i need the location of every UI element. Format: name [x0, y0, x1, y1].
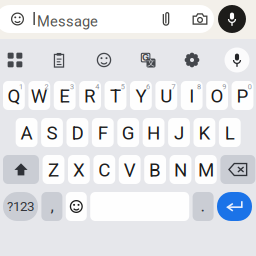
button[interactable]: U — [155, 81, 177, 110]
button[interactable]: D — [66, 118, 88, 147]
button[interactable]: Z — [43, 155, 64, 184]
staticText: T — [110, 85, 121, 107]
button[interactable]: Clipboard — [44, 46, 74, 74]
staticText: D — [71, 122, 83, 144]
staticText: S — [46, 122, 57, 144]
staticText: . — [201, 195, 206, 216]
staticText: 2 — [44, 82, 48, 91]
staticText: 0 — [248, 82, 252, 91]
button[interactable]: P — [232, 81, 253, 110]
button[interactable]: O — [206, 81, 228, 110]
staticText: W — [31, 85, 48, 107]
button[interactable]: R — [79, 81, 101, 110]
staticText: J — [174, 122, 184, 144]
button[interactable]: A — [16, 118, 37, 147]
button[interactable]: L — [219, 118, 241, 147]
staticText: K — [198, 122, 210, 144]
staticText: 4 — [95, 82, 99, 91]
staticText: G — [122, 122, 135, 144]
staticText: ?123 — [7, 199, 34, 214]
button[interactable]: N — [170, 155, 191, 184]
staticText: 1 — [19, 82, 23, 91]
button[interactable]: I — [181, 81, 203, 110]
staticText: H — [147, 122, 160, 144]
staticText: R — [84, 85, 96, 107]
button[interactable]: J — [168, 118, 190, 147]
staticText: 6 — [146, 82, 150, 91]
staticText: Y — [135, 85, 146, 107]
staticText: C — [98, 159, 110, 181]
button[interactable]: V — [119, 155, 141, 184]
button[interactable]: Apps — [0, 46, 30, 74]
button[interactable]: M — [195, 155, 217, 184]
button[interactable]: Q — [3, 81, 25, 110]
staticText: F — [98, 122, 108, 144]
staticText: O — [211, 85, 224, 107]
staticText: 文 — [147, 58, 155, 68]
staticText: X — [73, 159, 85, 181]
staticText: L — [225, 122, 235, 144]
button[interactable]: Y — [130, 81, 152, 110]
button[interactable]: E — [54, 81, 76, 110]
button[interactable]: B — [144, 155, 166, 184]
staticText: A — [21, 122, 33, 144]
button[interactable]: Emoji — [89, 46, 119, 74]
button[interactable]: Translate — [133, 46, 163, 74]
button[interactable]: Settings — [177, 46, 207, 74]
staticText: N — [174, 159, 187, 181]
button[interactable]: Symbols — [3, 192, 38, 221]
staticText: P — [236, 85, 248, 107]
staticText: Message — [37, 13, 98, 30]
staticText: E — [59, 85, 70, 107]
button[interactable]: Camera — [190, 7, 210, 31]
button[interactable]: Shift — [3, 155, 39, 184]
staticText: M — [198, 159, 214, 181]
button[interactable]: Voice input — [222, 46, 252, 74]
button[interactable]: W — [28, 81, 50, 110]
button[interactable]: Enter — [217, 192, 252, 221]
button[interactable]: Attach — [156, 7, 176, 31]
button[interactable]: G — [117, 118, 139, 147]
staticText: U — [160, 85, 172, 107]
button[interactable]: X — [68, 155, 90, 184]
button[interactable]: F — [92, 118, 114, 147]
button[interactable]: Comma — [41, 192, 62, 221]
button[interactable]: C — [93, 155, 115, 184]
staticText: G — [142, 52, 149, 63]
staticText: Q — [7, 85, 20, 107]
button[interactable]: Emoji — [66, 192, 87, 221]
staticText: V — [124, 159, 136, 181]
staticText: 3 — [70, 82, 74, 91]
staticText: B — [149, 159, 161, 181]
staticText: Z — [48, 159, 59, 181]
button[interactable]: H — [143, 118, 164, 147]
button[interactable]: S — [41, 118, 63, 147]
button[interactable]: Voice message — [218, 5, 246, 33]
staticText: 8 — [197, 82, 201, 91]
button[interactable]: T — [105, 81, 126, 110]
button[interactable]: K — [193, 118, 215, 147]
staticText: 5 — [121, 82, 125, 91]
staticText: , — [50, 195, 53, 216]
staticText: 9 — [222, 82, 226, 91]
staticText: 7 — [171, 82, 175, 91]
button[interactable]: Period — [193, 192, 214, 221]
staticText: I — [189, 85, 194, 107]
button[interactable]: Backspace — [220, 155, 255, 184]
